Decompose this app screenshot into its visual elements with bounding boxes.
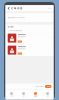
button[interactable]: 精选商品标题名称… (5, 44, 53, 56)
staticText: 精选商品标题名称… (18, 34, 27, 35)
staticText: x1 (49, 37, 51, 39)
staticText: ¥ 99 (18, 53, 21, 54)
staticText: 立即付款 (46, 86, 50, 87)
staticText: x1 (49, 49, 51, 51)
staticText: 消息 (22, 95, 24, 97)
button[interactable]: 消息 (17, 89, 29, 99)
staticText: 精选商品标题名称… (18, 46, 27, 47)
button[interactable]: 精选商品标题名称… (5, 32, 53, 44)
staticText: 规格:均码 颜色分类 (18, 36, 26, 38)
button[interactable]: 立即付款 (45, 85, 51, 88)
button[interactable]: 收货人 王小明 138****8888 (5, 13, 53, 22)
button[interactable]: 我的 (41, 89, 53, 99)
staticText: 规格:均码 颜色分类 (18, 48, 26, 50)
staticText: 首页 (10, 95, 12, 97)
staticText: 购物车 (34, 95, 37, 97)
staticText: 旗舰店 (10, 26, 13, 28)
staticText: 我的 (46, 95, 48, 97)
staticText: 合计 ¥198.00 (36, 86, 44, 87)
button[interactable]: 购物车 (29, 89, 41, 99)
staticText: 七天无理由退货 · 运费险 · 极速退款 (8, 30, 22, 31)
staticText: ¥ 99 (18, 41, 21, 42)
button[interactable]: 首页 (5, 89, 17, 99)
button[interactable]: More (46, 5, 52, 11)
staticText: 收货人 王小明 138****8888 (8, 17, 25, 18)
button[interactable]: Back (6, 5, 11, 11)
staticText: 订单详情 (11, 7, 23, 10)
button[interactable]: 旗舰店 (5, 25, 53, 29)
